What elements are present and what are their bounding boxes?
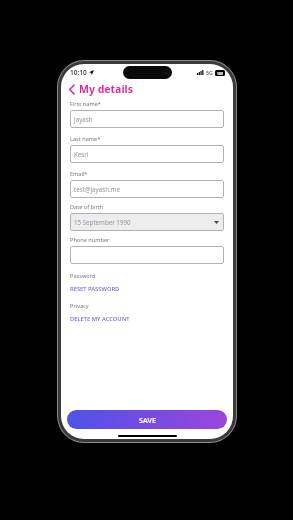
staticText: Last name* [70,135,101,143]
button[interactable]: RESET PASSWORD [70,284,120,294]
staticText: Privacy [70,302,89,310]
staticText: Kesri [74,150,89,158]
staticText: SAVE [139,415,156,425]
staticText: Email* [70,170,88,178]
button[interactable]: Date of birth [70,213,224,231]
button[interactable]: Back [61,81,233,97]
staticText: My details [79,82,133,96]
staticText: DELETE MY ACCOUNT [70,315,130,323]
staticText: Jayash [74,115,93,123]
staticText: 15 September 1990 [74,218,131,226]
button[interactable]: First name [70,110,224,128]
staticText: 100 [217,71,223,76]
staticText: Phone number [70,236,110,244]
button[interactable]: DELETE MY ACCOUNT [70,314,130,324]
staticText: 5G [206,69,213,76]
staticText: Password [70,272,96,280]
button[interactable]: Phone number [70,246,224,264]
button[interactable]: SAVE [67,410,227,429]
staticText: 10:10 [70,68,87,77]
staticText: test@jayash.me [74,185,120,193]
staticText: RESET PASSWORD [70,285,120,293]
staticText: Date of birth [70,203,104,211]
button[interactable]: Last name [70,145,224,163]
button[interactable]: Email [70,180,224,198]
staticText: First name* [70,100,101,108]
